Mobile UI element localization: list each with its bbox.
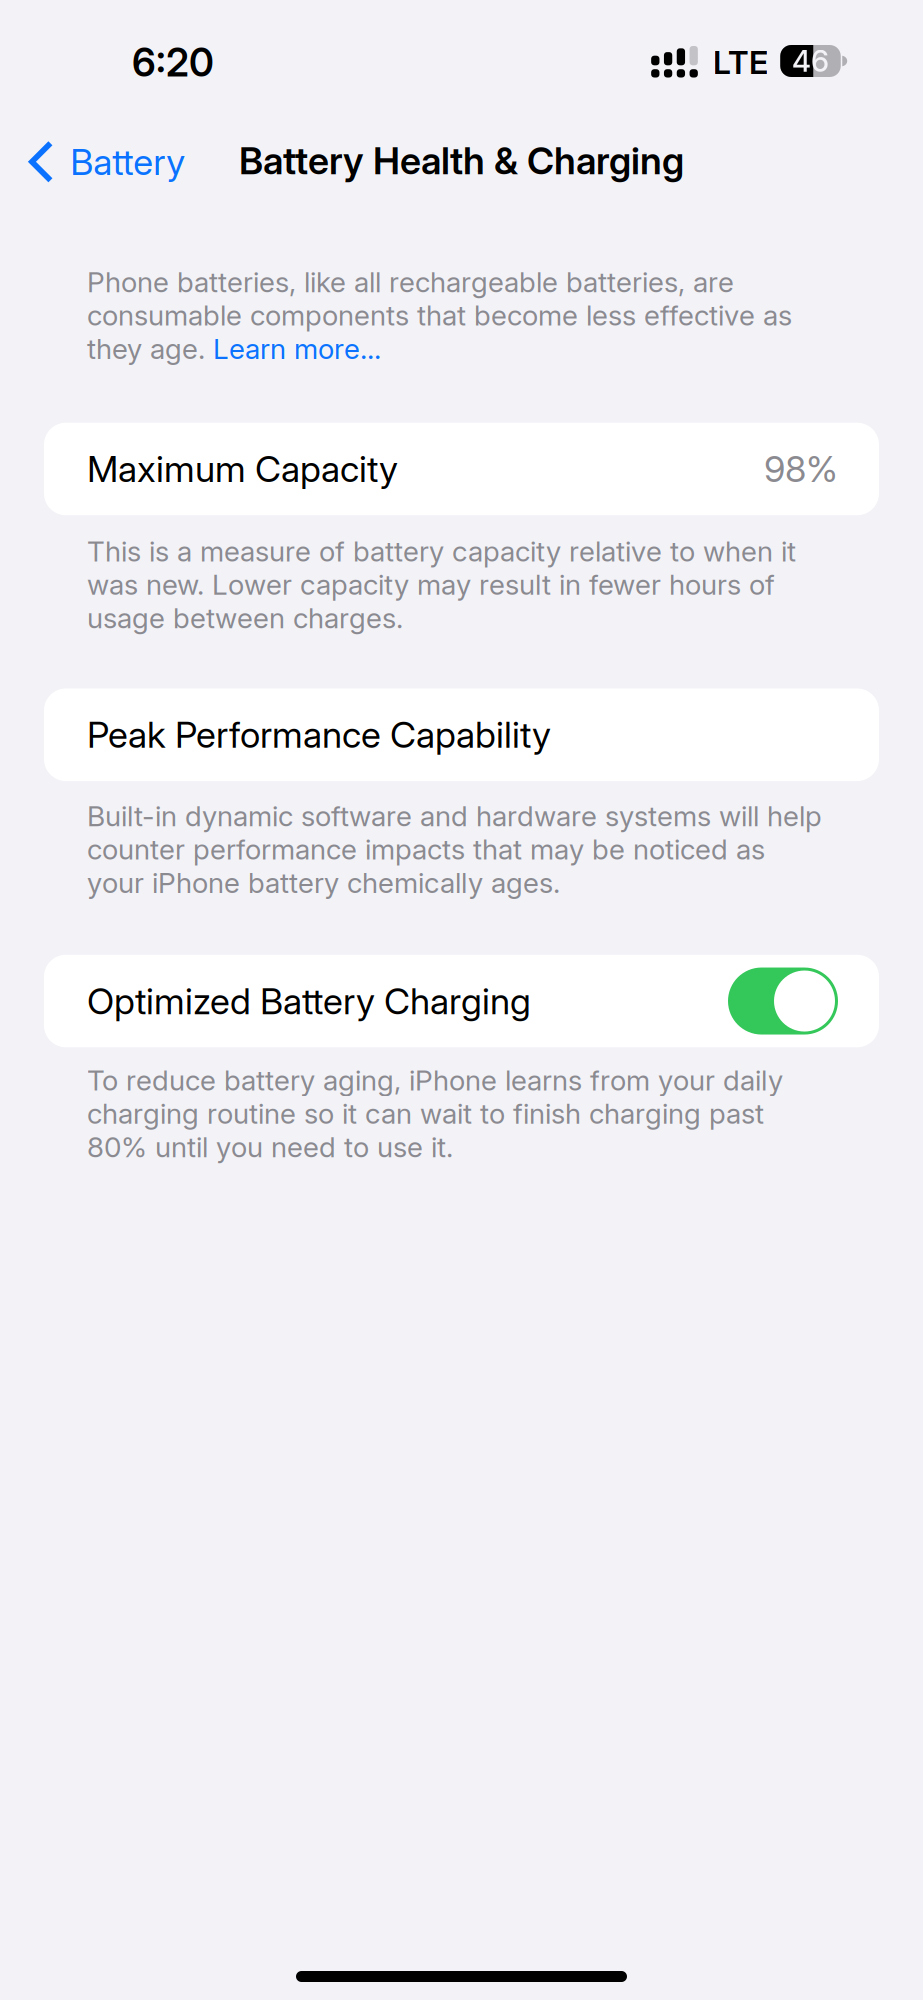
staticText: Learn more...	[213, 332, 381, 366]
staticText: Optimized Battery Charging	[87, 979, 531, 1023]
button[interactable]: Maximum Capacity	[44, 423, 879, 515]
staticText: consumable components that become less e…	[87, 298, 792, 332]
staticText: 46	[792, 43, 829, 79]
staticText: charging routine so it can wait to finis…	[87, 1097, 764, 1131]
staticText: 6:20	[132, 39, 214, 86]
staticText: To reduce battery aging, iPhone learns f…	[87, 1063, 783, 1097]
staticText: Battery	[70, 140, 185, 184]
staticText: Built-in dynamic software and hardware s…	[87, 799, 822, 833]
staticText: was new. Lower capacity may result in fe…	[87, 568, 775, 602]
button[interactable]: Optimized Battery Charging	[44, 955, 879, 1047]
staticText: 98%	[764, 447, 838, 491]
button[interactable]: Learn more...	[213, 332, 381, 366]
staticText: they age.	[87, 332, 213, 366]
staticText: usage between charges.	[87, 601, 403, 635]
staticText: your iPhone battery chemically ages.	[87, 866, 560, 900]
button[interactable]: Optimized Battery Charging, on	[728, 967, 838, 1034]
button[interactable]: Back to Battery	[0, 110, 203, 198]
staticText: counter performance impacts that may be …	[87, 832, 765, 866]
staticText: Maximum Capacity	[87, 447, 398, 491]
staticText: 80% until you need to use it.	[87, 1130, 453, 1164]
staticText: Peak Performance Capability	[87, 713, 551, 757]
staticText: Phone batteries, like all rechargeable b…	[87, 265, 734, 299]
button[interactable]: Peak Performance Capability	[44, 688, 879, 781]
staticText: This is a measure of battery capacity re…	[87, 534, 796, 568]
staticText: Battery Health & Charging	[239, 138, 684, 183]
staticText: LTE	[713, 43, 768, 82]
